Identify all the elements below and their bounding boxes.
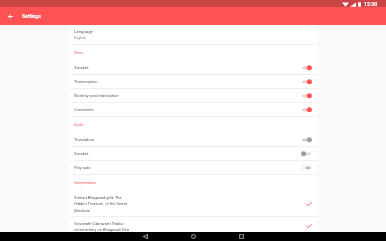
button[interactable]: Sanskrit (69, 61, 317, 74)
staticText: Show (74, 51, 84, 55)
button[interactable]: Sanskrit (69, 147, 317, 160)
button[interactable]: Language (69, 25, 317, 44)
staticText: Language (74, 29, 93, 34)
button[interactable]: Śrīmad Bhagavad-gītā: The Hidden Treasur… (69, 191, 317, 216)
staticText: Audio (74, 123, 84, 127)
staticText: 12:30 (364, 1, 378, 7)
button[interactable]: Comments (69, 103, 317, 116)
button[interactable]: Back (139, 232, 151, 241)
staticText: Visvanath Cakravarti Thakur commentary o… (74, 221, 300, 232)
button[interactable]: Visvanath Cakravarti Thakur commentary o… (69, 217, 317, 232)
staticText: Word-by-word translation (74, 93, 301, 98)
button[interactable]: Back (3, 9, 17, 23)
button[interactable]: Home (187, 232, 199, 241)
staticText: Sanskrit (74, 151, 301, 156)
button[interactable]: Translation (69, 133, 317, 146)
button[interactable]: Play auto (69, 161, 317, 174)
staticText: Translation (74, 137, 301, 142)
staticText: Transcription (74, 79, 301, 84)
staticText: Settings (22, 13, 41, 19)
staticText: Play auto (74, 165, 301, 170)
staticText: English (74, 36, 86, 40)
staticText: Comments (74, 107, 301, 112)
staticText: Sanskrit (74, 65, 301, 70)
staticText: Śrīmad Bhagavad-gītā: The Hidden Treasur… (74, 195, 300, 213)
button[interactable]: Word-by-word translation (69, 89, 317, 102)
button[interactable]: Transcription (69, 75, 317, 88)
button[interactable]: Recents (235, 232, 247, 241)
staticText: Interpretation (74, 181, 97, 185)
